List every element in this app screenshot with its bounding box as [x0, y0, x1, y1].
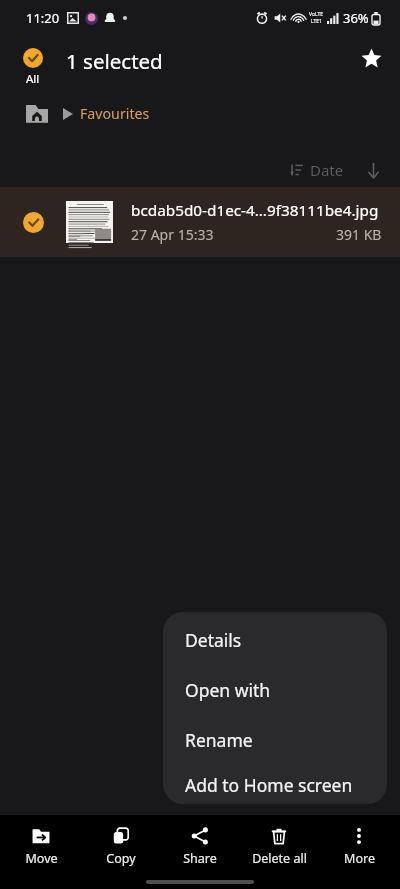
staticText: Move	[25, 850, 58, 867]
other: Select all	[23, 48, 43, 68]
staticText: 27 Apr 15:33	[131, 225, 214, 244]
button[interactable]: Favourite	[351, 38, 392, 79]
staticText: Share	[183, 850, 217, 867]
button[interactable]: Home	[25, 103, 49, 124]
staticText: 391 KB	[336, 225, 382, 244]
staticText: 1 selected	[66, 47, 163, 75]
staticText: Delete all	[252, 850, 307, 867]
staticText: bcdab5d0-d1ec-4…9f38111be4.jpg	[131, 200, 379, 221]
staticText: Add to Home screen	[185, 773, 353, 797]
button[interactable]: Date	[286, 154, 348, 186]
staticText: Details	[185, 628, 242, 652]
staticText: All	[26, 71, 40, 87]
staticText: Date	[310, 160, 344, 180]
button[interactable]: Share	[162, 827, 238, 867]
button[interactable]: Select all	[14, 42, 52, 93]
button[interactable]: Sort direction	[361, 157, 386, 184]
button[interactable]: Add to Home screen	[163, 765, 387, 804]
button[interactable]: Move	[3, 827, 79, 867]
staticText: 11:20	[26, 9, 60, 27]
button[interactable]: Delete all	[241, 827, 317, 867]
button[interactable]: Details	[163, 615, 387, 665]
button[interactable]: Rename	[163, 715, 387, 765]
staticText: More	[344, 850, 375, 867]
button[interactable]: Copy	[83, 827, 159, 867]
staticText: Open with	[185, 678, 271, 702]
button[interactable]: Favourites	[80, 104, 150, 123]
staticText: LTE1	[311, 18, 322, 25]
staticText: 36%	[343, 9, 369, 27]
button[interactable]: Open with	[163, 665, 387, 715]
button[interactable]: More	[321, 827, 397, 867]
staticText: Rename	[185, 728, 253, 752]
staticText: Copy	[106, 850, 136, 867]
staticText: VoLTE	[309, 11, 324, 18]
button[interactable]: bcdab5d0-d1ec-4…9f38111be4.jpg	[0, 187, 400, 257]
